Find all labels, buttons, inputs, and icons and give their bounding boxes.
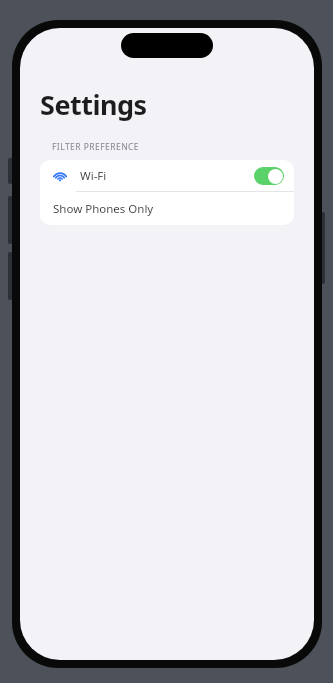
staticText: Wi-Fi [80, 168, 107, 184]
button[interactable]: Show Phones Only [40, 192, 294, 225]
button[interactable]: Wi-Fi toggle, on [254, 167, 284, 185]
staticText: Settings [40, 86, 147, 123]
staticText: FILTER PREFERENCE [52, 141, 140, 153]
staticText: Show Phones Only [53, 201, 154, 217]
other: Wi-Fi [52, 168, 68, 184]
button[interactable]: Wi-Fi [40, 160, 294, 191]
